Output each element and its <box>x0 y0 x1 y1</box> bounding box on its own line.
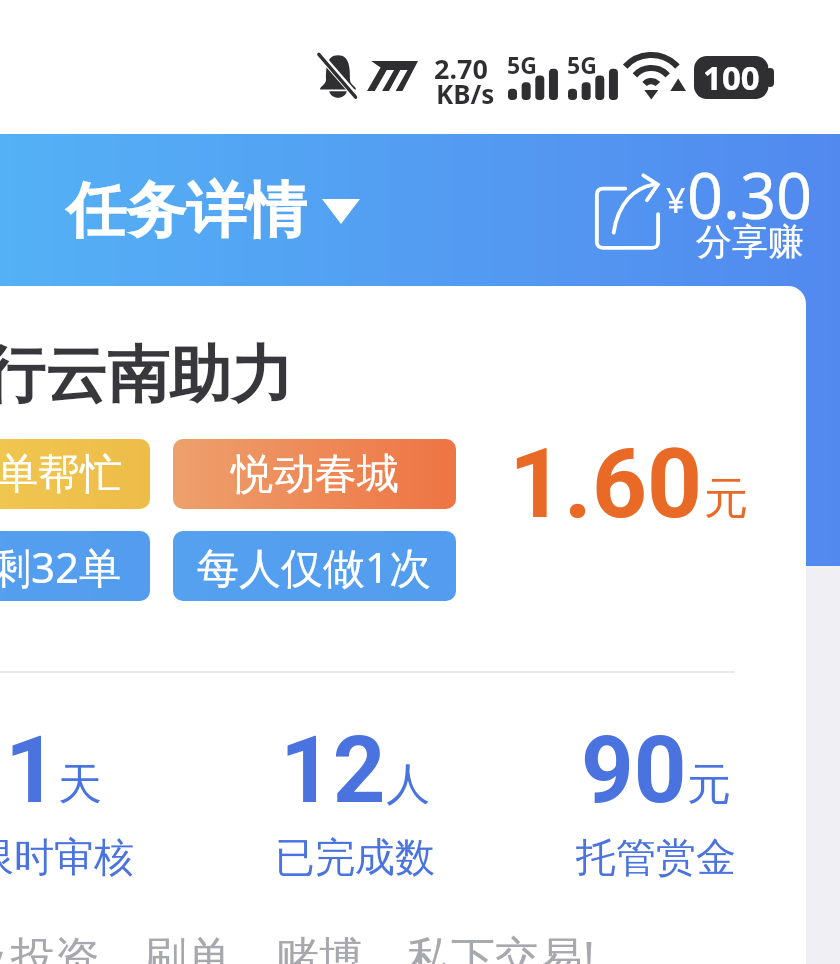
staticText: 90 <box>581 717 687 825</box>
staticText: 跑腿行云南助力 <box>0 336 293 414</box>
staticText: 任务详情 <box>66 173 306 249</box>
button[interactable]: 每人仅做1次 <box>173 531 456 601</box>
staticText: 人 <box>386 757 430 812</box>
staticText: 限时审核 <box>0 832 134 882</box>
staticText: KB/s <box>436 76 495 111</box>
button[interactable]: 跑单帮忙 <box>0 439 150 509</box>
staticText: 仅剩32单 <box>0 538 122 595</box>
staticText: 天 <box>58 757 102 812</box>
button[interactable]: 任务详情 <box>66 173 360 249</box>
staticText: 元 <box>687 757 731 812</box>
staticText: ¥ <box>666 177 686 223</box>
staticText: 1 <box>5 717 58 825</box>
staticText: 悦动春城 <box>231 448 399 501</box>
staticText: 禁止涉及投资、刷单、赌博、私下交易! <box>0 926 595 964</box>
staticText: 2.70 <box>434 50 488 87</box>
staticText: 0.30 <box>687 152 812 238</box>
staticText: 12 <box>280 717 386 825</box>
staticText: 1.60 <box>509 428 703 541</box>
button[interactable]: 仅剩32单 <box>0 531 150 601</box>
button[interactable]: Share and earn <box>592 160 808 272</box>
staticText: 每人仅做1次 <box>197 538 432 595</box>
staticText: 5G <box>567 49 597 80</box>
staticText: 分享赚 <box>696 219 804 264</box>
staticText: 跑单帮忙 <box>0 448 122 501</box>
staticText: 托管赏金 <box>576 832 736 882</box>
button[interactable]: 悦动春城 <box>173 439 456 509</box>
staticText: 100 <box>703 55 760 98</box>
staticText: 5G <box>507 49 537 80</box>
staticText: 元 <box>704 471 748 526</box>
staticText: 已完成数 <box>275 832 435 882</box>
